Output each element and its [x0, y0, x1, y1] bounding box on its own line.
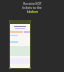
staticText: Receive KOT [23, 2, 42, 6]
button[interactable] [9, 20, 31, 69]
staticText: tickets to the [22, 6, 42, 10]
staticText: kitchen [27, 10, 38, 14]
